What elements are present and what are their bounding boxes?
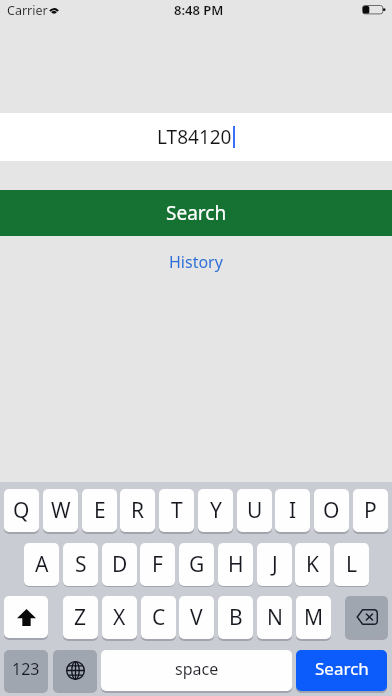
staticText: G [189,550,205,579]
button[interactable]: Y [198,489,233,532]
button[interactable]: E [82,489,117,532]
button[interactable]: Next keyboard [53,650,97,691]
staticText: D [112,550,128,579]
staticText: W [51,496,71,525]
button[interactable]: Backspace [345,596,388,638]
staticText: M [304,603,324,632]
button[interactable]: P [353,489,388,532]
button[interactable]: LT84120 [0,113,392,161]
button[interactable]: B [218,596,253,639]
staticText: T [171,496,183,525]
staticText: S [75,550,87,579]
staticText: X [113,603,126,632]
button[interactable]: G [179,543,214,586]
staticText: U [247,496,263,525]
staticText: History [169,251,223,273]
button[interactable]: W [43,489,78,532]
staticText: P [364,496,377,525]
button[interactable]: N [257,596,292,639]
staticText: C [152,603,166,632]
staticText: space [175,658,219,680]
staticText: O [323,496,340,525]
button[interactable]: D [102,543,137,586]
staticText: F [152,550,163,579]
button[interactable]: V [179,596,214,639]
button[interactable]: Z [63,596,98,639]
button[interactable]: C [141,596,176,639]
button[interactable]: J [257,543,292,586]
staticText: A [35,550,49,579]
staticText: Q [13,496,30,525]
staticText: Y [210,496,222,525]
staticText: LT84120 [157,124,232,150]
button[interactable]: S [63,543,98,586]
button[interactable]: space [101,650,292,691]
button[interactable]: O [314,489,349,532]
staticText: H [228,550,244,579]
button[interactable]: Search [0,190,392,236]
button[interactable]: M [296,596,331,639]
staticText: R [131,496,145,525]
button[interactable]: H [218,543,253,586]
staticText: Carrier [7,2,48,19]
staticText: Search [166,200,227,226]
staticText: Z [74,603,87,632]
button[interactable]: K [295,543,330,586]
button[interactable]: A [24,543,59,586]
staticText: E [94,496,106,525]
button[interactable]: Search [296,650,387,691]
button[interactable]: L [334,543,369,586]
button[interactable]: U [237,489,272,532]
staticText: K [306,550,319,579]
staticText: V [190,603,203,632]
staticText: 123 [12,658,40,680]
button[interactable]: Numbers [4,650,48,691]
button[interactable]: F [140,543,175,586]
button[interactable]: History [0,248,392,276]
button[interactable]: R [120,489,155,532]
staticText: J [272,550,278,579]
button[interactable]: I [275,489,310,532]
staticText: B [229,603,243,632]
staticText: L [346,550,358,579]
staticText: 8:48 PM [174,1,224,19]
staticText: I [289,496,297,525]
button[interactable]: Q [4,489,39,532]
staticText: N [267,603,283,632]
staticText: Search [315,657,369,680]
button[interactable]: T [159,489,194,532]
button[interactable]: X [102,596,137,639]
button[interactable]: Shift [4,596,48,638]
